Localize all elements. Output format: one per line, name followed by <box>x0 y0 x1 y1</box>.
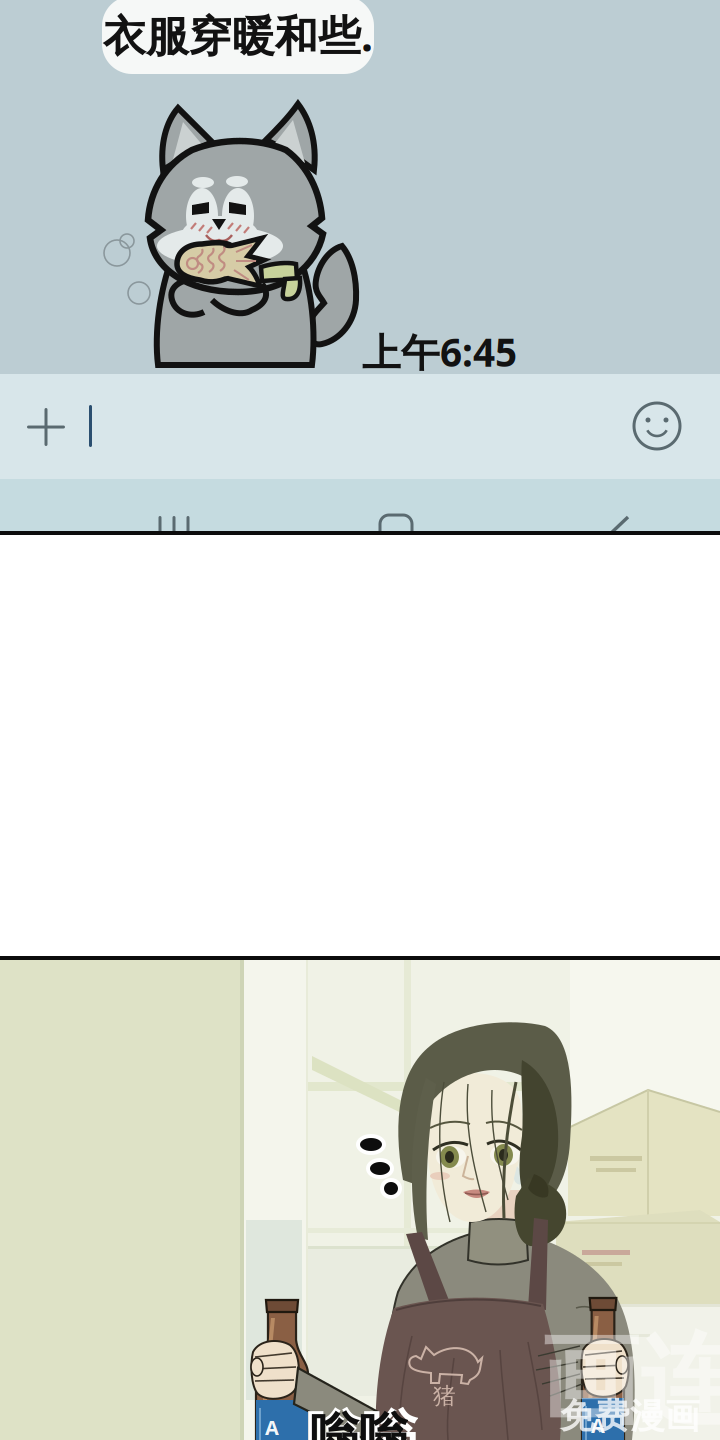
staticText: 上午6:45 <box>362 326 517 377</box>
button[interactable]: Add attachment <box>12 393 80 461</box>
button[interactable]: Back <box>609 517 629 535</box>
button[interactable]: Recent apps <box>158 516 190 536</box>
staticText: A <box>591 1412 605 1439</box>
staticText: A <box>265 1414 279 1440</box>
staticText: 嗡嗡 <box>310 1406 408 1440</box>
staticText: 猪 <box>433 1382 456 1410</box>
staticText: 画连 <box>540 1320 720 1440</box>
staticText: 衣服穿暖和些. <box>103 7 373 63</box>
button[interactable]: Emoji <box>624 393 690 459</box>
staticText: 嗡嗡 <box>306 1402 418 1440</box>
staticText: 免费漫画 <box>560 1395 700 1438</box>
button[interactable]: Home <box>380 515 412 547</box>
